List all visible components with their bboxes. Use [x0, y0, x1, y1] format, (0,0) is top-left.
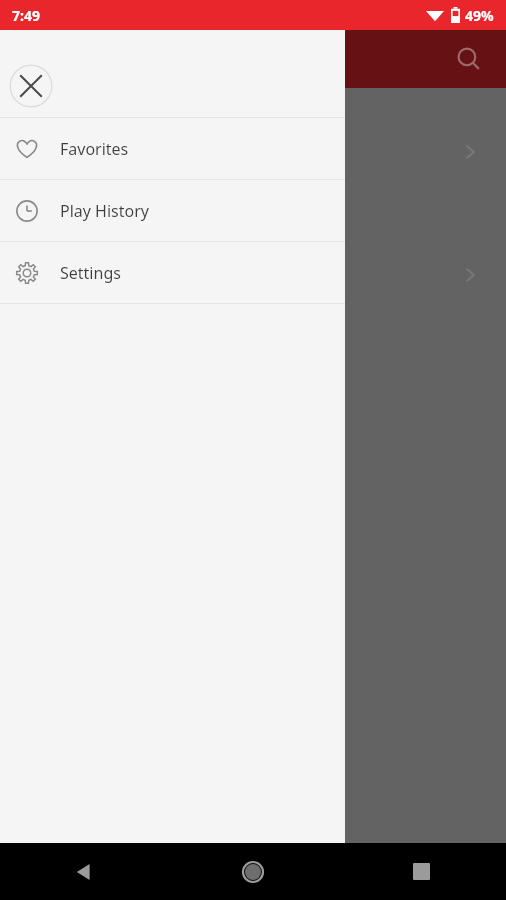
staticText: Settings — [60, 262, 121, 284]
button[interactable]: Play History — [0, 180, 345, 241]
button[interactable]: Back — [0, 843, 168, 900]
button[interactable]: Home — [168, 843, 337, 900]
button[interactable]: Open item — [458, 140, 482, 164]
button[interactable]: Close navigation drawer — [7, 62, 55, 110]
button[interactable]: Recent apps — [337, 843, 506, 900]
staticText: 7:49 — [12, 6, 40, 25]
staticText: 49% — [465, 6, 494, 25]
button[interactable]: Favorites — [0, 118, 345, 179]
staticText: Play History — [60, 200, 149, 222]
button[interactable]: Open item — [458, 263, 482, 287]
button[interactable]: Search — [446, 36, 492, 82]
staticText: Favorites — [60, 138, 129, 160]
button[interactable]: Settings — [0, 242, 345, 303]
